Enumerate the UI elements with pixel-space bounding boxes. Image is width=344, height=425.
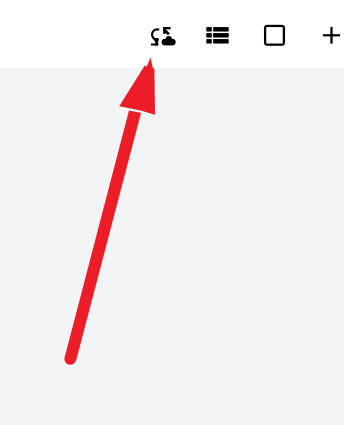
button[interactable]: Grid view: [252, 7, 297, 63]
button[interactable]: New note: [309, 7, 344, 63]
button[interactable]: Sync with iCloud: [139, 7, 183, 63]
button[interactable]: List view: [195, 7, 239, 63]
